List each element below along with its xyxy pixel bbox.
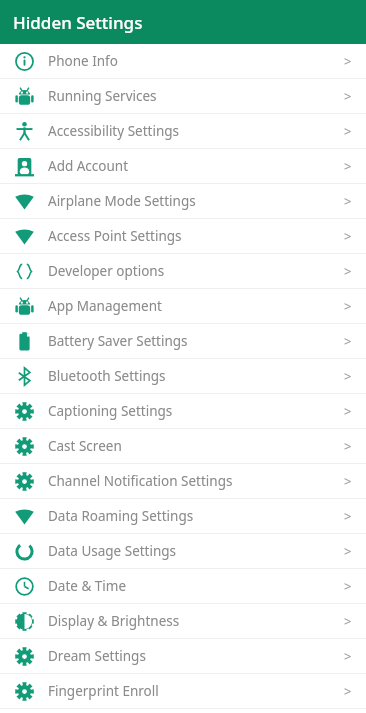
other: Cast Screen bbox=[15, 437, 34, 456]
staticText: Data Roaming Settings bbox=[48, 507, 194, 525]
staticText: > bbox=[344, 402, 352, 420]
button[interactable]: Cast Screen bbox=[0, 429, 366, 463]
staticText: > bbox=[344, 87, 352, 105]
button[interactable]: App Management bbox=[0, 289, 366, 323]
other: Data Roaming Settings bbox=[15, 507, 34, 526]
staticText: Airplane Mode Settings bbox=[48, 192, 196, 210]
button[interactable]: Developer options bbox=[0, 254, 366, 288]
staticText: > bbox=[344, 682, 352, 700]
button[interactable]: Access Point Settings bbox=[0, 219, 366, 253]
staticText: Cast Screen bbox=[48, 437, 122, 455]
other: Battery Saver Settings bbox=[15, 332, 34, 351]
staticText: Bluetooth Settings bbox=[48, 367, 166, 385]
other: Running Services bbox=[15, 87, 34, 106]
other: Channel Notification Settings bbox=[15, 472, 34, 491]
button[interactable]: Dream Settings bbox=[0, 639, 366, 673]
staticText: > bbox=[344, 332, 352, 350]
other: Date & Time bbox=[15, 577, 34, 596]
staticText: Access Point Settings bbox=[48, 227, 182, 245]
button[interactable]: Bluetooth Settings bbox=[0, 359, 366, 393]
other: Developer options bbox=[15, 262, 34, 281]
staticText: > bbox=[344, 612, 352, 630]
staticText: Phone Info bbox=[48, 52, 118, 70]
staticText: App Management bbox=[48, 297, 162, 315]
other: App Management bbox=[15, 297, 34, 316]
button[interactable]: Add Account bbox=[0, 149, 366, 183]
button[interactable]: Running Services bbox=[0, 79, 366, 113]
button[interactable]: Battery Saver Settings bbox=[0, 324, 366, 358]
staticText: > bbox=[344, 297, 352, 315]
button[interactable]: Fingerprint Enroll bbox=[0, 674, 366, 708]
other: Fingerprint Enroll bbox=[15, 682, 34, 701]
staticText: > bbox=[344, 52, 352, 70]
staticText: Add Account bbox=[48, 157, 129, 175]
staticText: Accessibility Settings bbox=[48, 122, 180, 140]
staticText: > bbox=[344, 437, 352, 455]
button[interactable]: Data Roaming Settings bbox=[0, 499, 366, 533]
button[interactable]: Date & Time bbox=[0, 569, 366, 603]
staticText: > bbox=[344, 647, 352, 665]
other: Dream Settings bbox=[15, 647, 34, 666]
staticText: Date & Time bbox=[48, 577, 127, 595]
other: Access Point Settings bbox=[15, 227, 34, 246]
staticText: > bbox=[344, 157, 352, 175]
other: Data Usage Settings bbox=[15, 542, 34, 561]
staticText: > bbox=[344, 122, 352, 140]
staticText: > bbox=[344, 577, 352, 595]
staticText: > bbox=[344, 542, 352, 560]
other: Bluetooth Settings bbox=[15, 367, 34, 386]
staticText: Running Services bbox=[48, 87, 157, 105]
button[interactable]: Display & Brightness bbox=[0, 604, 366, 638]
staticText: > bbox=[344, 262, 352, 280]
staticText: Battery Saver Settings bbox=[48, 332, 188, 350]
button[interactable]: Channel Notification Settings bbox=[0, 464, 366, 498]
staticText: > bbox=[344, 192, 352, 210]
button[interactable]: Captioning Settings bbox=[0, 394, 366, 428]
staticText: > bbox=[344, 472, 352, 490]
staticText: Fingerprint Enroll bbox=[48, 682, 159, 700]
staticText: Display & Brightness bbox=[48, 612, 180, 630]
other: Phone Info bbox=[15, 52, 34, 71]
button[interactable]: Phone Info bbox=[0, 44, 366, 78]
staticText: Channel Notification Settings bbox=[48, 472, 233, 490]
button[interactable]: Data Usage Settings bbox=[0, 534, 366, 568]
button[interactable]: Hidden Settings bbox=[0, 0, 366, 44]
staticText: Data Usage Settings bbox=[48, 542, 177, 560]
button[interactable]: Accessibility Settings bbox=[0, 114, 366, 148]
staticText: Dream Settings bbox=[48, 647, 146, 665]
staticText: Hidden Settings bbox=[13, 11, 143, 34]
other: Captioning Settings bbox=[15, 402, 34, 421]
staticText: > bbox=[344, 227, 352, 245]
button[interactable]: Airplane Mode Settings bbox=[0, 184, 366, 218]
other: Add Account bbox=[15, 157, 34, 176]
other: Accessibility Settings bbox=[15, 122, 34, 141]
other: Display & Brightness bbox=[15, 612, 34, 631]
staticText: > bbox=[344, 367, 352, 385]
staticText: Captioning Settings bbox=[48, 402, 173, 420]
other: Airplane Mode Settings bbox=[15, 192, 34, 211]
staticText: Developer options bbox=[48, 262, 165, 280]
staticText: > bbox=[344, 507, 352, 525]
